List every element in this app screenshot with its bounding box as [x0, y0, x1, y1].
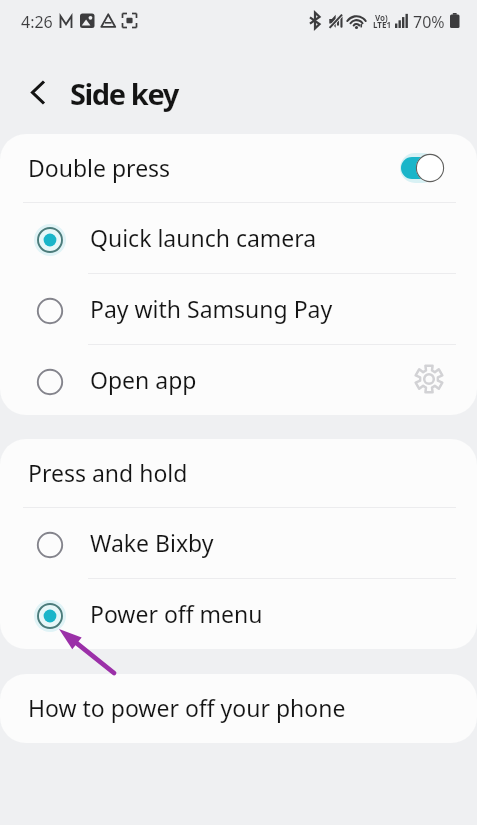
staticText: Press and hold	[28, 457, 188, 488]
button[interactable]: Open app	[0, 345, 477, 415]
staticText: 4:26	[21, 11, 53, 33]
button[interactable]: Power off menu	[0, 579, 477, 649]
staticText: How to power off your phone	[28, 692, 346, 723]
staticText: Wake Bixby	[90, 527, 214, 558]
button[interactable]: Wake Bixby	[0, 508, 477, 578]
staticText: Quick launch camera	[90, 222, 317, 253]
staticText: Vo)	[375, 12, 388, 23]
button[interactable]: Back	[20, 69, 60, 109]
staticText: Side key	[70, 74, 178, 113]
staticText: Power off menu	[90, 598, 263, 629]
button[interactable]: Open app settings	[409, 360, 449, 400]
button[interactable]: Quick launch camera	[0, 203, 477, 273]
staticText: Open app	[90, 364, 197, 395]
staticText: 70%	[413, 11, 445, 33]
button[interactable]: Double press toggle	[401, 152, 447, 184]
button[interactable]: Double press	[0, 134, 477, 202]
button[interactable]: How to power off your phone	[0, 674, 477, 743]
staticText: LTE1	[373, 19, 391, 30]
button[interactable]: Pay with Samsung Pay	[0, 274, 477, 344]
button[interactable]: Press and hold	[0, 439, 477, 507]
staticText: Pay with Samsung Pay	[90, 293, 333, 324]
staticText: Double press	[28, 152, 171, 183]
